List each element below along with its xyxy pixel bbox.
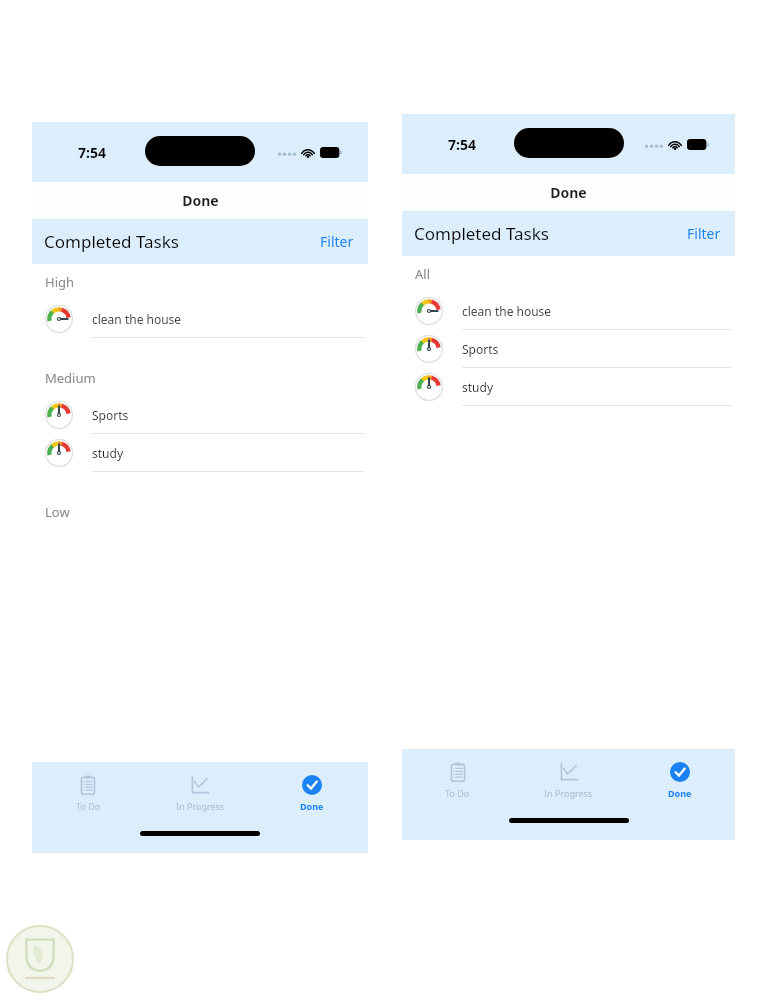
button[interactable]: Filter (673, 218, 735, 249)
staticText: 7:54 (448, 135, 476, 154)
button[interactable]: Sports (32, 396, 368, 434)
button[interactable]: clean the house (402, 292, 735, 330)
other: In Progress (559, 762, 579, 782)
staticText: All (415, 265, 431, 283)
other: In Progress (190, 775, 210, 795)
staticText: Completed Tasks (414, 222, 549, 245)
button[interactable]: To Do (402, 749, 513, 812)
staticText: 7:54 (78, 143, 106, 162)
staticText: study (92, 445, 123, 461)
staticText: Sports (92, 407, 129, 423)
other: To Do (78, 775, 98, 795)
staticText: Medium (45, 369, 96, 387)
staticText: Filter (687, 224, 721, 243)
staticText: clean the house (462, 303, 552, 319)
staticText: clean the house (92, 311, 182, 327)
staticText: Sports (462, 341, 499, 357)
other: To Do (448, 762, 468, 782)
staticText: In Progress (544, 787, 593, 799)
other: Done (302, 775, 322, 795)
button[interactable]: Sports (402, 330, 735, 368)
staticText: To Do (445, 787, 470, 799)
button[interactable]: Done (624, 749, 735, 812)
button[interactable]: To Do (32, 762, 144, 825)
staticText: To Do (76, 800, 101, 812)
button[interactable]: study (32, 434, 368, 472)
staticText: In Progress (176, 800, 225, 812)
button[interactable]: Filter (306, 226, 368, 257)
staticText: High (45, 273, 75, 291)
staticText: Low (45, 503, 70, 521)
staticText: Done (300, 800, 324, 812)
staticText: Completed Tasks (44, 230, 179, 253)
other: Done (670, 762, 690, 782)
staticText: Done (182, 191, 219, 210)
button[interactable]: study (402, 368, 735, 406)
button[interactable]: In Progress (513, 749, 624, 812)
staticText: study (462, 379, 493, 395)
staticText: Filter (320, 232, 354, 251)
staticText: Done (550, 183, 587, 202)
button[interactable]: In Progress (144, 762, 256, 825)
button[interactable]: Done (256, 762, 368, 825)
staticText: Done (668, 787, 692, 799)
button[interactable]: clean the house (32, 300, 368, 338)
